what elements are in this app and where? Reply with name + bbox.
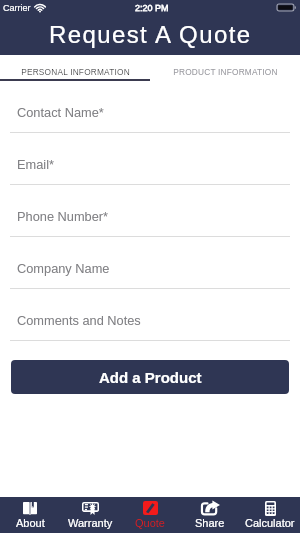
- button[interactable]: PRODUCT INFORMATION: [150, 55, 300, 81]
- staticText: Email*: [17, 157, 54, 171]
- staticText: 2:20 PM: [135, 3, 169, 13]
- staticText: Contact Name*: [17, 105, 104, 119]
- staticText: Quote: [135, 517, 165, 529]
- button[interactable]: Calculator: [240, 497, 300, 533]
- button[interactable]: About: [0, 497, 60, 533]
- button[interactable]: Add a Product: [11, 360, 289, 394]
- staticText: Company Name: [17, 261, 110, 275]
- button[interactable]: PERSONAL INFORMATION: [0, 55, 150, 81]
- staticText: Phone Number*: [17, 209, 109, 223]
- staticText: Calculator: [245, 517, 295, 529]
- button[interactable]: Share: [180, 497, 240, 533]
- staticText: Request A Quote: [49, 21, 252, 48]
- staticText: Share: [195, 517, 225, 529]
- staticText: Comments and Notes: [17, 313, 141, 327]
- staticText: About: [16, 517, 45, 529]
- button[interactable]: Warranty: [60, 497, 120, 533]
- button[interactable]: Quote: [120, 497, 180, 533]
- staticText: PRODUCT INFORMATION: [173, 67, 278, 76]
- staticText: PERSONAL INFORMATION: [21, 67, 130, 76]
- staticText: Add a Product: [99, 369, 202, 386]
- staticText: Warranty: [68, 517, 113, 529]
- staticText: Carrier: [3, 3, 31, 13]
